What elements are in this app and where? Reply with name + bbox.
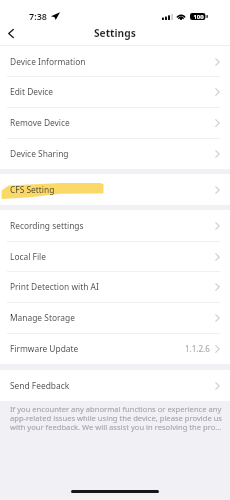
button[interactable]: Print Detection with AI	[0, 271, 230, 302]
staticText: Send Feedback	[10, 380, 70, 391]
staticText: CFS Setting	[10, 184, 55, 195]
staticText: Edit Device	[10, 86, 54, 97]
staticText: If you encounter any abnormal functions …	[10, 404, 222, 433]
button[interactable]: Remove Device	[0, 107, 230, 138]
button[interactable]: Back	[0, 22, 22, 44]
staticText: Remove Device	[10, 117, 70, 128]
staticText: Settings	[94, 26, 136, 40]
button[interactable]: Send Feedback	[0, 370, 230, 401]
staticText: Device Information	[10, 56, 86, 67]
button[interactable]: Device Sharing	[0, 138, 230, 169]
staticText: Device Sharing	[10, 148, 69, 159]
button[interactable]: Firmware Update	[0, 333, 230, 364]
staticText: 7:38	[29, 10, 47, 22]
staticText: 100	[193, 13, 204, 20]
button[interactable]: Recording settings	[0, 210, 230, 241]
staticText: Manage Storage	[10, 312, 75, 323]
button[interactable]: CFS Setting	[0, 174, 230, 205]
staticText: Local File	[10, 251, 46, 262]
staticText: Print Detection with AI	[10, 281, 99, 292]
staticText: Recording settings	[10, 220, 84, 231]
staticText: Firmware Update	[10, 343, 79, 354]
button[interactable]: Edit Device	[0, 76, 230, 107]
button[interactable]: Manage Storage	[0, 302, 230, 333]
button[interactable]: Device Information	[0, 46, 230, 77]
button[interactable]: Local File	[0, 241, 230, 272]
staticText: 1.1.2.6	[185, 343, 210, 354]
